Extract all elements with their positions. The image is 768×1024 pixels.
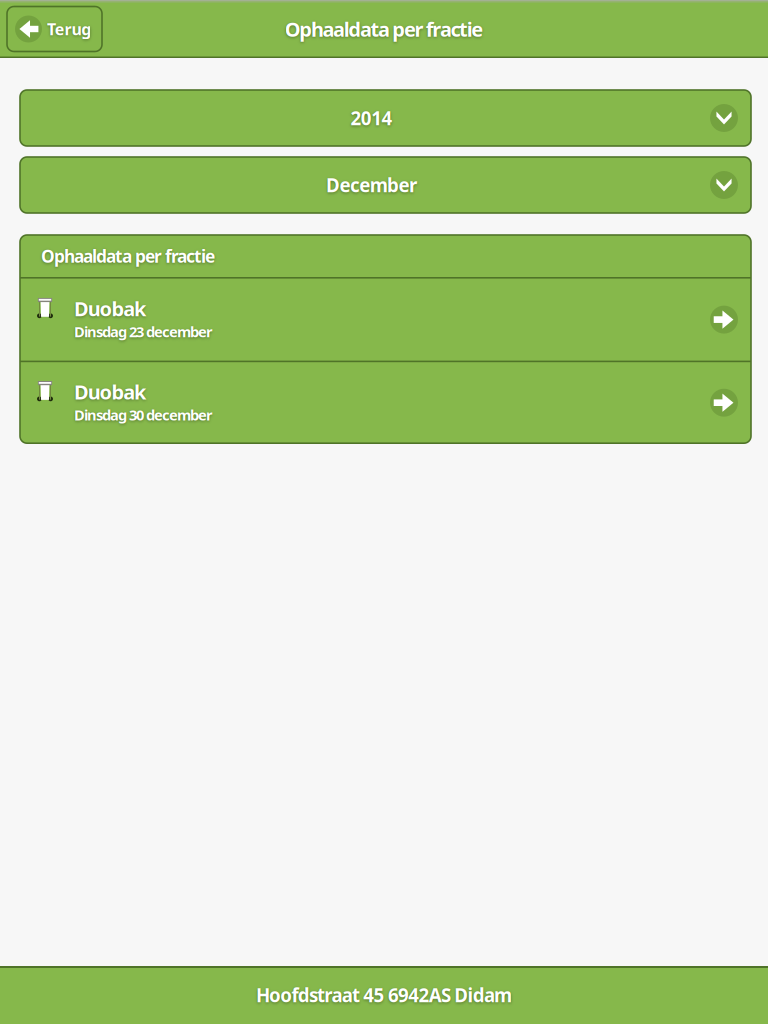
button[interactable]: Duobak [20, 279, 751, 361]
staticText: December [326, 173, 417, 197]
staticText: Duobak [74, 378, 146, 405]
button[interactable]: December [20, 157, 751, 213]
staticText: Dinsdag 30 december [74, 405, 213, 424]
button[interactable]: Terug [7, 6, 102, 51]
button[interactable]: Duobak [20, 362, 751, 443]
staticText: Ophaaldata per fractie [41, 244, 215, 267]
staticText: Duobak [74, 295, 146, 322]
staticText: 2014 [350, 106, 393, 130]
staticText: Dinsdag 23 december [74, 322, 213, 341]
staticText: Terug [47, 18, 91, 40]
button[interactable]: 2014 [20, 90, 751, 146]
staticText: Ophaaldata per fractie [285, 16, 483, 42]
staticText: Hoofdstraat 45 6942AS Didam [256, 983, 512, 1007]
